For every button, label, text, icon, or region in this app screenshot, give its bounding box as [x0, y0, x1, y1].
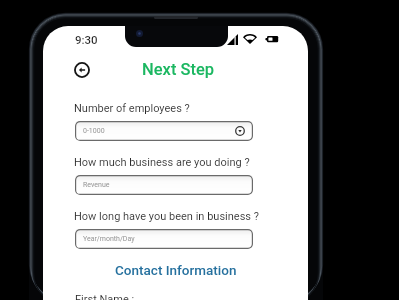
button[interactable]: Year/month/Day: [75, 229, 253, 249]
button[interactable]: Back: [74, 62, 90, 78]
staticText: 0-1000: [83, 127, 105, 135]
staticText: Year/month/Day: [83, 235, 135, 243]
staticText: Next Step: [142, 60, 215, 79]
button[interactable]: 0-1000: [75, 121, 253, 141]
staticText: Contact Information: [115, 262, 237, 278]
button[interactable]: Revenue: [75, 175, 253, 195]
staticText: 9:30: [75, 33, 98, 46]
staticText: Revenue: [83, 181, 110, 189]
staticText: Number of employees ?: [74, 102, 190, 115]
staticText: First Name :: [75, 293, 135, 300]
staticText: How much business are you doing ?: [74, 156, 250, 169]
staticText: How long have you been in business ?: [74, 210, 259, 223]
